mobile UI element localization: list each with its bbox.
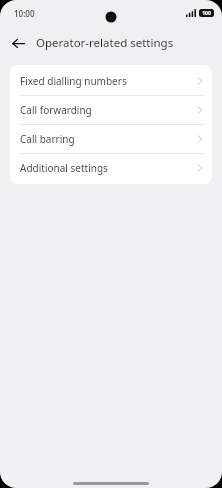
- staticText: Operator-related settings: [36, 35, 174, 51]
- staticText: 10:00: [14, 8, 35, 19]
- button[interactable]: Fixed dialling numbers: [10, 67, 212, 95]
- staticText: Call forwarding: [20, 103, 92, 117]
- staticText: 100: [202, 10, 211, 17]
- button[interactable]: Back: [7, 32, 29, 54]
- button[interactable]: Call forwarding: [10, 96, 212, 124]
- button[interactable]: Additional settings: [10, 154, 212, 182]
- button[interactable]: Call barring: [10, 125, 212, 153]
- staticText: Call barring: [20, 132, 75, 146]
- staticText: Additional settings: [20, 161, 108, 175]
- staticText: Fixed dialling numbers: [20, 74, 127, 88]
